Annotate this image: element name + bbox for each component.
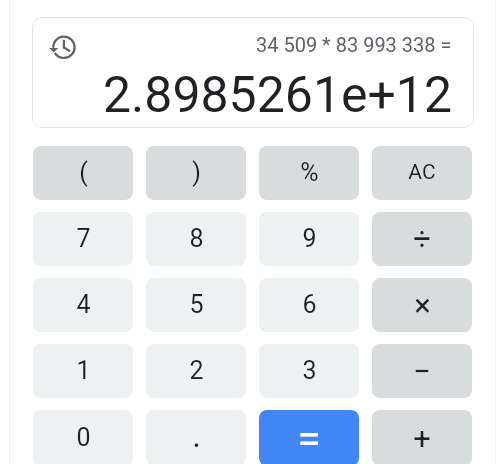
staticText: 2 [189, 356, 204, 385]
staticText: 34 509 * 83 993 338 = [256, 33, 452, 56]
staticText: × [414, 287, 431, 323]
button[interactable]: History [45, 31, 79, 65]
staticText: 5 [189, 290, 204, 319]
button[interactable]: 0 [33, 410, 133, 464]
button[interactable]: = [259, 410, 359, 464]
button[interactable]: % [259, 146, 359, 200]
button[interactable]: AC [372, 146, 472, 200]
staticText: 0 [76, 423, 91, 452]
button[interactable]: 1 [33, 344, 133, 398]
staticText: = [297, 413, 321, 463]
button[interactable]: 7 [33, 212, 133, 266]
button[interactable]: 4 [33, 278, 133, 332]
staticText: − [413, 353, 431, 389]
staticText: ( [79, 158, 88, 187]
button[interactable]: ) [146, 146, 246, 200]
button[interactable]: 3 [259, 344, 359, 398]
staticText: 4 [76, 290, 91, 319]
staticText: + [413, 420, 431, 456]
button[interactable]: 8 [146, 212, 246, 266]
staticText: 9 [302, 224, 317, 253]
button[interactable]: 2 [146, 344, 246, 398]
button[interactable]: ÷ [372, 212, 472, 266]
staticText: AC [408, 160, 436, 185]
staticText: 6 [302, 290, 317, 319]
button[interactable]: + [372, 410, 472, 464]
staticText: ÷ [413, 221, 431, 257]
button[interactable]: 5 [146, 278, 246, 332]
staticText: 3 [302, 356, 317, 385]
staticText: 7 [76, 224, 91, 253]
staticText: 2.8985261e+12 [103, 66, 453, 125]
staticText: 8 [189, 224, 204, 253]
button[interactable]: − [372, 344, 472, 398]
button[interactable]: 9 [259, 212, 359, 266]
button[interactable]: 6 [259, 278, 359, 332]
staticText: 1 [76, 356, 91, 385]
button[interactable]: . [146, 410, 246, 464]
staticText: % [300, 158, 319, 187]
staticText: ) [192, 158, 201, 187]
button[interactable]: × [372, 278, 472, 332]
button[interactable]: ( [33, 146, 133, 200]
staticText: . [192, 416, 201, 455]
